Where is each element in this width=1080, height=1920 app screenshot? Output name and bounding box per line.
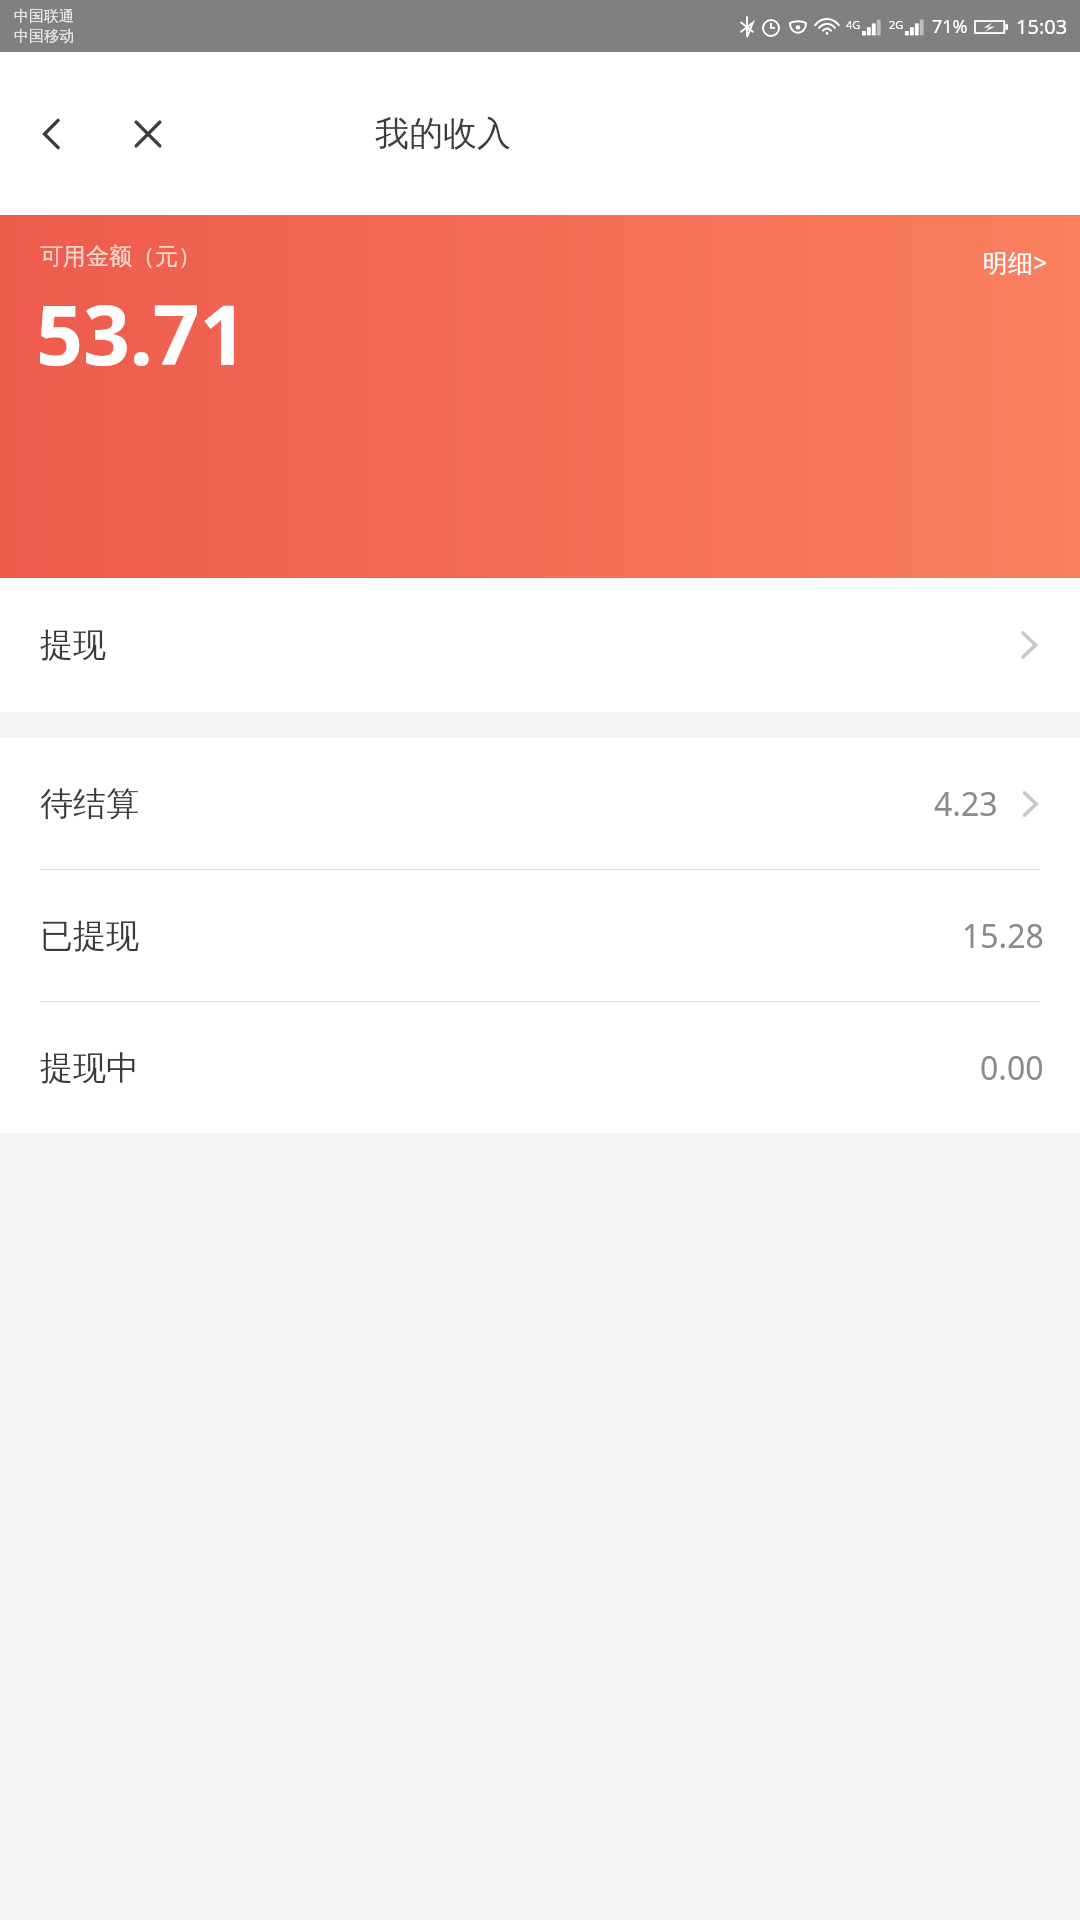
- staticText: 待结算: [40, 783, 139, 825]
- button[interactable]: 提现中: [0, 1002, 1080, 1133]
- staticText: 0.00: [980, 1046, 1044, 1090]
- button[interactable]: 待结算: [0, 738, 1080, 869]
- staticText: 中国联通: [14, 7, 74, 26]
- staticText: 中国移动: [14, 27, 74, 46]
- staticText: 71%: [932, 14, 968, 39]
- staticText: 15:03: [1016, 13, 1068, 40]
- button[interactable]: Close: [110, 96, 186, 172]
- button[interactable]: 明细>: [951, 237, 1080, 287]
- button[interactable]: Back: [14, 96, 90, 172]
- staticText: 2G: [889, 17, 904, 32]
- staticText: 15.28: [962, 914, 1044, 958]
- staticText: 明细>: [983, 245, 1048, 279]
- staticText: 我的收入: [375, 112, 511, 155]
- button[interactable]: 已提现: [0, 870, 1080, 1001]
- staticText: 53.71: [36, 277, 247, 389]
- staticText: 4G: [846, 17, 861, 32]
- staticText: 提现中: [40, 1047, 139, 1089]
- button[interactable]: 提现: [0, 578, 1080, 712]
- staticText: 可用金额（元）: [40, 242, 201, 271]
- staticText: 提现: [40, 624, 106, 666]
- staticText: 4.23: [934, 782, 998, 826]
- staticText: 已提现: [40, 915, 139, 957]
